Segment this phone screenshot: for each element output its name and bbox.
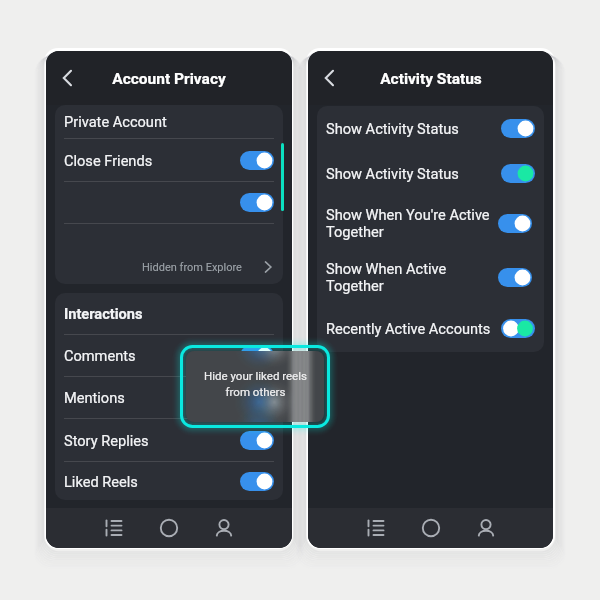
staticText: Show When Active Together bbox=[326, 260, 498, 295]
staticText: Account Privacy bbox=[112, 70, 226, 88]
staticText: Activity Status bbox=[380, 70, 482, 88]
staticText: Mentions bbox=[64, 389, 240, 406]
staticText: Show When You're Active Together bbox=[326, 206, 498, 241]
button[interactable]: Home bbox=[159, 518, 179, 538]
staticText: Interactions bbox=[64, 305, 274, 322]
button[interactable]: Show Activity Status bbox=[317, 150, 544, 196]
button[interactable] bbox=[240, 472, 274, 491]
button[interactable]: Liked Reels bbox=[55, 462, 283, 500]
staticText: Hidden from Explore bbox=[142, 261, 242, 274]
button[interactable] bbox=[498, 214, 532, 233]
button[interactable]: Interactions bbox=[55, 293, 283, 334]
button[interactable] bbox=[240, 388, 274, 407]
button[interactable]: Profile bbox=[214, 518, 234, 538]
staticText: Private Account bbox=[64, 113, 274, 130]
button[interactable]: Feed bbox=[366, 518, 386, 538]
staticText: Liked Reels bbox=[64, 473, 240, 490]
button[interactable]: Home bbox=[421, 518, 441, 538]
button[interactable]: Show Activity Status bbox=[317, 106, 544, 150]
button[interactable]: Mentions bbox=[55, 377, 283, 418]
button[interactable]: Profile bbox=[476, 518, 496, 538]
button[interactable]: Private Account bbox=[55, 105, 283, 138]
button[interactable] bbox=[55, 182, 283, 223]
staticText: Comments bbox=[64, 347, 240, 364]
staticText: Recently Active Accounts bbox=[326, 320, 501, 337]
staticText: Show Activity Status bbox=[326, 165, 501, 182]
button[interactable]: Comments bbox=[55, 335, 283, 376]
button[interactable]: Back bbox=[53, 63, 83, 93]
button[interactable]: Back bbox=[315, 63, 345, 93]
button[interactable] bbox=[501, 119, 535, 138]
button[interactable]: Close Friends bbox=[55, 139, 283, 181]
button[interactable]: Feed bbox=[104, 518, 124, 538]
staticText: Show Activity Status bbox=[326, 120, 501, 137]
button[interactable] bbox=[501, 319, 535, 338]
button[interactable] bbox=[501, 164, 535, 183]
button[interactable]: Show When Active Together bbox=[317, 250, 544, 305]
button[interactable] bbox=[240, 151, 274, 170]
button[interactable] bbox=[240, 193, 274, 212]
button[interactable]: Recently Active Accounts bbox=[317, 305, 544, 352]
button[interactable]: Show When You're Active Together bbox=[317, 196, 544, 250]
button[interactable]: Hidden from Explore bbox=[55, 250, 283, 284]
staticText: Story Replies bbox=[64, 432, 240, 449]
button[interactable]: Story Replies bbox=[55, 419, 283, 461]
staticText: Hide your liked reels from others bbox=[204, 369, 307, 399]
button[interactable] bbox=[498, 268, 532, 287]
button[interactable] bbox=[240, 431, 274, 450]
staticText: Close Friends bbox=[64, 152, 240, 169]
button[interactable] bbox=[240, 346, 274, 365]
